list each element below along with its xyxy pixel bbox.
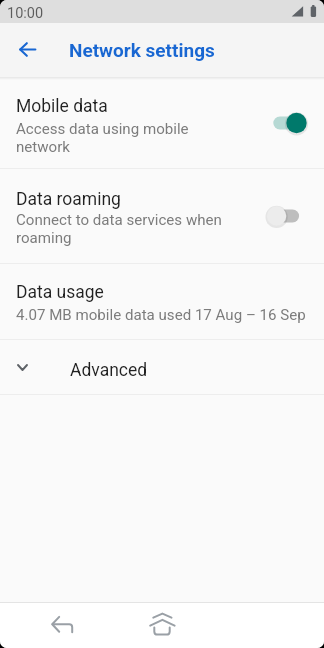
- button[interactable]: On: [264, 108, 310, 138]
- button[interactable]: Navigate up: [9, 31, 46, 68]
- staticText: 10:00: [7, 5, 44, 22]
- button[interactable]: Off: [264, 201, 310, 231]
- button[interactable]: Back: [39, 603, 87, 648]
- button[interactable]: Advanced: [0, 340, 324, 394]
- staticText: Access data using mobile network: [16, 120, 189, 156]
- staticText: Data roaming: [16, 189, 121, 210]
- staticText: 4.07 MB mobile data used 17 Aug – 16 Sep: [16, 306, 306, 324]
- staticText: Connect to data services when roaming: [16, 211, 222, 247]
- button[interactable]: Home: [138, 603, 186, 648]
- staticText: Network settings: [69, 39, 215, 61]
- button[interactable]: [0, 264, 324, 339]
- button[interactable]: [0, 78, 324, 168]
- staticText: Mobile data: [16, 96, 108, 117]
- staticText: Advanced: [70, 360, 148, 381]
- button[interactable]: [0, 169, 324, 263]
- staticText: Data usage: [16, 282, 104, 303]
